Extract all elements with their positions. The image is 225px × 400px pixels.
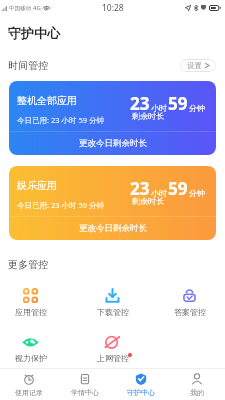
staticText: 23 [130,177,150,200]
button[interactable]: 设置 [180,59,216,72]
staticText: 分钟 [189,103,205,113]
staticText: 中国移动 [9,5,31,12]
staticText: 答案管控 [174,307,206,317]
button[interactable]: 更改今日剩余时长 [9,132,216,155]
staticText: 时间管控 [8,59,48,72]
button[interactable]: 应用管控 [0,288,61,317]
button[interactable]: 更改今日剩余时长 [9,217,216,240]
staticText: 视力保护 [15,353,47,363]
staticText: 分钟 [189,188,205,198]
button[interactable]: 守护中心 [113,373,169,397]
staticText: 上网管控 [97,353,129,363]
button[interactable]: 使用记录 [0,373,57,397]
staticText: 10:28 [102,2,124,14]
staticText: 应用管控 [15,307,47,317]
staticText: 今日已用: 23 小时 59 分钟 [17,200,104,210]
staticText: 整机全部应用 [17,94,77,107]
button[interactable]: 我的 [169,373,225,397]
staticText: 4G [33,4,41,12]
staticText: 更改今日剩余时长 [79,223,147,234]
staticText: 下载管控 [97,307,129,317]
staticText: 23 [130,92,150,115]
staticText: 小时 [151,188,167,198]
staticText: 娱乐应用 [17,179,57,192]
staticText: 小时 [151,103,167,113]
button[interactable]: 整机全部应用 [9,81,216,155]
staticText: 更多管控 [8,258,48,271]
staticText: 59 [168,177,188,200]
button[interactable]: 下载管控 [61,288,164,317]
staticText: 剩余时长 [132,196,164,206]
button[interactable]: 视力保护 [0,334,61,363]
button[interactable]: 娱乐应用 [9,166,216,240]
staticText: 使用记录 [15,388,43,397]
staticText: 我的 [190,388,204,397]
staticText: 学情中心 [71,388,99,397]
staticText: 守护中心 [8,25,60,41]
staticText: 更改今日剩余时长 [79,138,147,149]
staticText: 守护中心 [127,388,155,397]
staticText: 剩余时长 [132,111,164,121]
staticText: 59 [168,92,188,115]
staticText: 设置 [187,61,202,70]
staticText: 今日已用: 23 小时 59 分钟 [17,115,104,125]
button[interactable]: 答案管控 [164,288,215,317]
button[interactable]: 学情中心 [57,373,113,397]
button[interactable]: 上网管控 [61,334,164,363]
